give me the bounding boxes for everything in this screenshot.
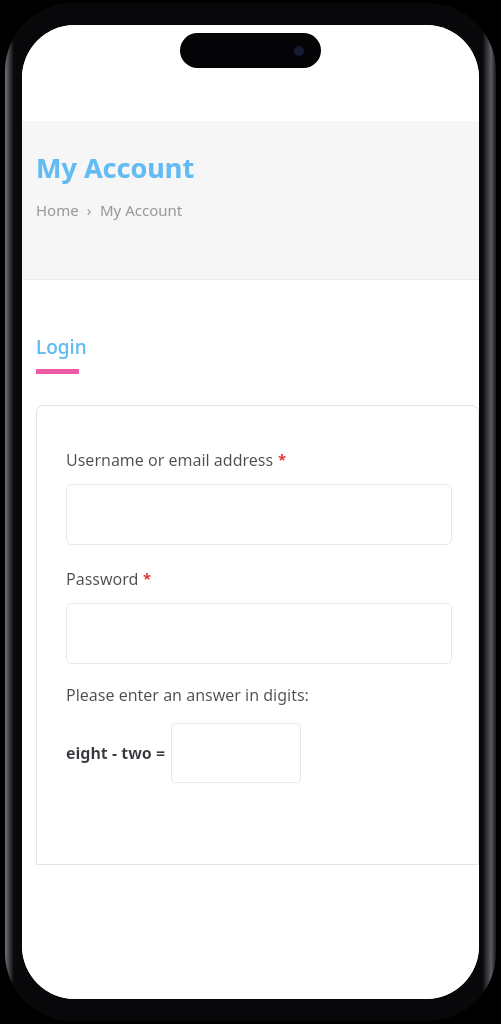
button[interactable]: Username or email address field: [66, 484, 452, 545]
staticText: *: [278, 449, 287, 469]
button[interactable]: Captcha answer field: [171, 723, 301, 783]
staticText: *: [143, 568, 152, 588]
button[interactable]: Password field: [66, 603, 452, 664]
staticText: My Account: [36, 149, 195, 186]
staticText: ›: [79, 200, 100, 220]
staticText: eight - two =: [66, 742, 166, 764]
staticText: Username or email address: [66, 449, 274, 471]
staticText: My Account: [100, 200, 183, 220]
staticText: Login: [36, 334, 87, 360]
staticText: Please enter an answer in digits:: [66, 684, 309, 706]
button[interactable]: Login: [36, 334, 87, 374]
staticText: Password: [66, 568, 139, 590]
button[interactable]: Home: [36, 200, 79, 220]
